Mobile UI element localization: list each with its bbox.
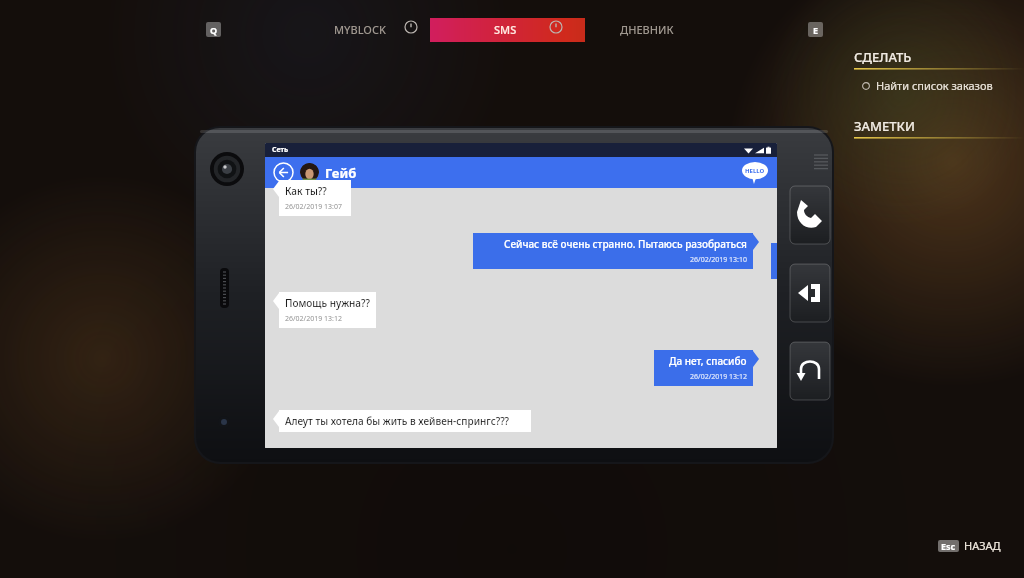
staticText: 26/02/2019 13:07 <box>285 202 342 212</box>
staticText: HELLO <box>745 167 765 175</box>
button[interactable]: Hello <box>742 162 768 184</box>
staticText: СДЕЛАТЬ <box>854 48 912 66</box>
staticText: 26/02/2019 13:12 <box>690 372 747 382</box>
staticText: MYBLOCK <box>334 22 386 37</box>
staticText: 26/02/2019 13:12 <box>285 314 342 324</box>
button[interactable]: Exit <box>790 264 830 322</box>
button[interactable]: Power <box>404 20 418 34</box>
button[interactable]: Да нет, спасибо <box>654 350 759 386</box>
button[interactable]: Undo <box>790 342 830 400</box>
staticText: Q <box>210 24 218 36</box>
button[interactable]: Esc <box>938 538 1001 553</box>
button[interactable]: Back <box>273 162 294 183</box>
button[interactable]: MYBLOCK <box>334 22 386 37</box>
staticText: ЗАМЕТКИ <box>854 117 915 135</box>
staticText: Сейчас всё очень странно. Пытаюсь разобр… <box>504 237 747 251</box>
staticText: E <box>813 24 819 36</box>
staticText: SMS <box>494 22 517 37</box>
staticText: НАЗАД <box>964 538 1001 553</box>
staticText: ДНЕВНИК <box>620 22 674 37</box>
staticText: Алеут ты хотела бы жить в хейвен-спрингс… <box>285 414 510 428</box>
button[interactable]: Call <box>790 186 830 244</box>
button[interactable]: E <box>808 22 823 37</box>
staticText: Esc <box>941 540 956 552</box>
button[interactable]: Найти список заказов <box>854 78 1024 93</box>
button[interactable]: ДНЕВНИК <box>620 22 674 37</box>
staticText: 26/02/2019 13:10 <box>690 255 747 265</box>
staticText: Сеть <box>272 145 289 155</box>
button[interactable]: Помощь нужна?? <box>273 292 376 328</box>
staticText: Как ты?? <box>285 184 327 198</box>
button[interactable]: Power <box>549 20 563 34</box>
staticText: Помощь нужна?? <box>285 296 370 310</box>
button[interactable]: Q <box>206 22 221 37</box>
button[interactable]: Алеут ты хотела бы жить в хейвен-спрингс… <box>273 410 531 436</box>
staticText: Гейб <box>325 164 357 182</box>
button[interactable]: SMS <box>494 22 517 37</box>
staticText: Да нет, спасибо <box>669 354 747 368</box>
staticText: Найти список заказов <box>876 78 993 93</box>
button[interactable]: Сейчас всё очень странно. Пытаюсь разобр… <box>473 233 759 269</box>
button[interactable]: Как ты?? <box>273 180 351 216</box>
